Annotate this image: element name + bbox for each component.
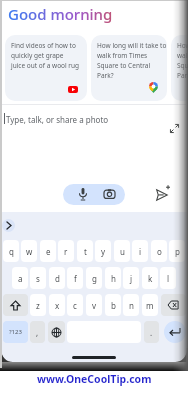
button[interactable]: i xyxy=(132,240,148,262)
staticText: v xyxy=(92,300,97,311)
button[interactable]: n xyxy=(123,294,139,316)
staticText: Find videos of how to quickly get grape … xyxy=(11,41,80,69)
staticText: How long will it take to walk from Times… xyxy=(97,41,167,79)
button[interactable]: c xyxy=(67,294,83,316)
button[interactable]: How long will it take to walk from Times… xyxy=(91,35,167,101)
staticText: l xyxy=(167,273,170,284)
button[interactable]: v xyxy=(86,294,102,316)
button[interactable] xyxy=(170,124,179,133)
staticText: t xyxy=(84,246,87,257)
button[interactable] xyxy=(63,184,125,205)
staticText: w xyxy=(26,246,33,257)
staticText: o xyxy=(157,246,162,257)
button[interactable]: a xyxy=(12,267,28,289)
staticText: i xyxy=(139,246,142,257)
button[interactable]: Type, talk, or share a photo xyxy=(6,114,109,125)
staticText: f xyxy=(74,273,77,284)
button[interactable] xyxy=(48,321,65,343)
button[interactable]: b xyxy=(105,294,121,316)
button[interactable]: r xyxy=(58,240,74,262)
button[interactable]: q xyxy=(3,240,19,262)
staticText: z xyxy=(36,300,40,311)
staticText: n xyxy=(129,300,134,311)
staticText: m xyxy=(146,300,154,311)
staticText: . xyxy=(150,327,153,338)
staticText: h xyxy=(111,273,116,284)
button[interactable]: s xyxy=(30,267,46,289)
staticText: How long walk from Square Park? xyxy=(177,41,188,79)
button[interactable]: o xyxy=(151,240,167,262)
button[interactable] xyxy=(161,294,186,316)
staticText: g xyxy=(92,273,97,284)
button[interactable]: l xyxy=(160,267,176,289)
button[interactable]: g xyxy=(86,267,102,289)
staticText: a xyxy=(18,273,23,284)
button[interactable]: f xyxy=(67,267,83,289)
button[interactable]: w xyxy=(21,240,37,262)
staticText: s xyxy=(36,273,40,284)
button[interactable]: ?123 xyxy=(3,321,28,343)
button[interactable]: p xyxy=(169,240,185,262)
staticText: ?123 xyxy=(9,328,22,336)
button[interactable] xyxy=(2,219,15,232)
button[interactable]: How long walk from Square Park? xyxy=(171,35,188,101)
button[interactable]: u xyxy=(114,240,130,262)
button[interactable]: Find videos of how to quickly get grape … xyxy=(5,35,87,101)
button[interactable]: j xyxy=(123,267,139,289)
button[interactable]: k xyxy=(142,267,158,289)
staticText: c xyxy=(73,300,77,311)
button[interactable]: y xyxy=(95,240,111,262)
staticText: Good morning xyxy=(8,4,113,24)
staticText: j xyxy=(130,273,133,284)
staticText: e xyxy=(46,246,51,257)
staticText: r xyxy=(64,246,68,257)
button[interactable]: m xyxy=(142,294,158,316)
button[interactable]: t xyxy=(77,240,93,262)
button[interactable] xyxy=(3,294,28,316)
staticText: b xyxy=(111,300,116,311)
button[interactable]: d xyxy=(49,267,65,289)
staticText: k xyxy=(148,273,153,284)
staticText: u xyxy=(120,246,125,257)
button[interactable]: . xyxy=(144,321,159,343)
staticText: , xyxy=(36,327,39,338)
button[interactable]: h xyxy=(105,267,121,289)
button[interactable]: , xyxy=(30,321,45,343)
button[interactable] xyxy=(156,185,170,201)
button[interactable]: x xyxy=(49,294,65,316)
staticText: q xyxy=(9,246,14,257)
button[interactable]: z xyxy=(30,294,46,316)
button[interactable]: e xyxy=(40,240,56,262)
staticText: y xyxy=(101,246,106,257)
button[interactable] xyxy=(164,321,186,343)
staticText: x xyxy=(55,300,60,311)
button[interactable]: www.OneCoolTip.com xyxy=(37,372,152,386)
staticText: p xyxy=(175,246,180,257)
staticText: d xyxy=(55,273,60,284)
